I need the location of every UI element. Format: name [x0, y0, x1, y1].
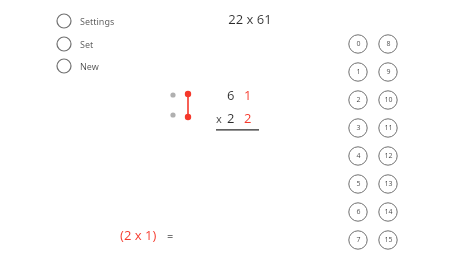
button[interactable]: New [56, 57, 99, 75]
staticText: 13 [384, 179, 393, 189]
staticText: New [80, 60, 99, 72]
button[interactable]: 5 [348, 174, 368, 194]
staticText: x [216, 111, 222, 126]
staticText: = [167, 228, 174, 243]
button[interactable]: Set [56, 35, 94, 53]
button[interactable]: 1 [348, 62, 368, 82]
button[interactable]: 6 [348, 202, 368, 222]
staticText: 7 [356, 235, 361, 245]
staticText: 15 [384, 235, 393, 245]
staticText: 8 [386, 39, 391, 49]
staticText: 11 [384, 123, 393, 133]
staticText: 6 [227, 86, 235, 104]
other: Step indicator [166, 86, 196, 126]
button[interactable]: 14 [378, 202, 398, 222]
staticText: 10 [384, 95, 393, 105]
button[interactable]: 4 [348, 146, 368, 166]
staticText: 2 [244, 109, 252, 127]
staticText: Settings [80, 15, 115, 27]
staticText: 2 [227, 109, 235, 127]
staticText: (2 x 1) [120, 226, 157, 244]
staticText: 1 [356, 67, 361, 77]
staticText: 12 [384, 151, 393, 161]
staticText: 0 [356, 39, 361, 49]
staticText: 6 [356, 207, 361, 217]
staticText: 1 [244, 86, 252, 104]
button[interactable]: 0 [348, 34, 368, 54]
button[interactable]: 12 [378, 146, 398, 166]
staticText: 5 [356, 179, 361, 189]
staticText: 22 x 61 [228, 10, 272, 28]
button[interactable]: Settings [56, 12, 115, 30]
staticText: 3 [356, 123, 361, 133]
staticText: 4 [356, 151, 361, 161]
button[interactable]: 8 [378, 34, 398, 54]
staticText: 9 [386, 67, 391, 77]
button[interactable]: 13 [378, 174, 398, 194]
button[interactable]: 11 [378, 118, 398, 138]
button[interactable]: 9 [378, 62, 398, 82]
button[interactable]: 2 [348, 90, 368, 110]
button[interactable]: 3 [348, 118, 368, 138]
staticText: 2 [356, 95, 361, 105]
staticText: 14 [384, 207, 393, 217]
button[interactable]: 15 [378, 230, 398, 250]
staticText: Set [80, 38, 94, 50]
button[interactable]: 10 [378, 90, 398, 110]
button[interactable]: 7 [348, 230, 368, 250]
